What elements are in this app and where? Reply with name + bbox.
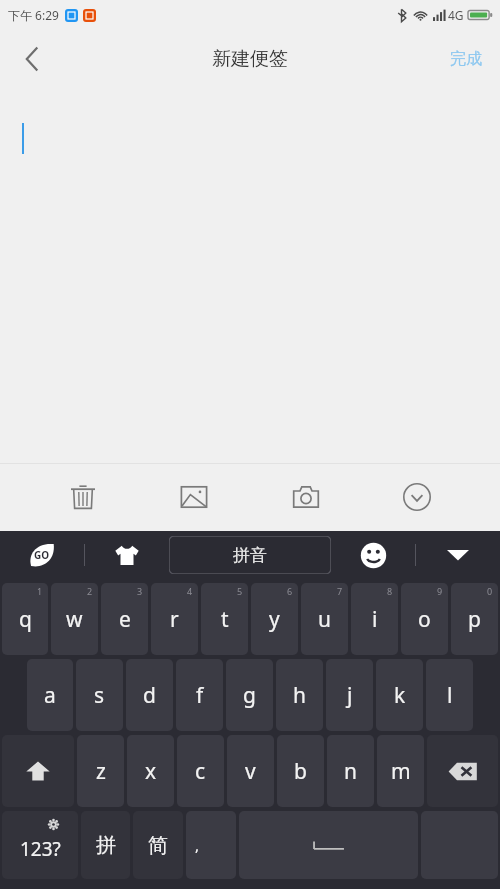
button[interactable]: a [27,659,73,731]
button[interactable]: 拼 [81,811,130,879]
staticText: 0 [487,585,493,597]
staticText: r [170,605,179,634]
staticText: u [318,605,331,634]
button[interactable]: Space [239,811,418,879]
button[interactable]: , [186,811,236,879]
button[interactable]: Shift [2,735,74,807]
staticText: 简 [148,833,168,858]
button[interactable]: j [326,659,373,731]
button[interactable]: 123? [2,811,78,879]
button[interactable]: c [177,735,224,807]
button[interactable]: s [76,659,123,731]
staticText: x [145,757,157,786]
staticText: GO [34,548,50,562]
button[interactable]: d [126,659,173,731]
staticText: 下午 6:29 [8,7,59,23]
staticText: s [94,681,105,710]
staticText: j [347,681,353,710]
button[interactable]: y [251,583,298,655]
button[interactable]: Take photo [278,469,334,525]
button[interactable]: h [276,659,323,731]
button[interactable]: f [176,659,223,731]
button[interactable]: w [51,583,98,655]
staticText: 5 [237,585,243,597]
staticText: o [418,605,431,634]
button[interactable]: Hide keyboard [416,531,500,579]
button[interactable]: q [2,583,48,655]
staticText: 8 [387,585,393,597]
button[interactable]: o [401,583,448,655]
button[interactable]: k [376,659,423,731]
button[interactable]: b [277,735,324,807]
staticText: 2 [87,585,93,597]
staticText: m [391,757,411,786]
staticText: t [221,605,229,634]
button[interactable]: t [201,583,248,655]
staticText: q [19,605,32,634]
staticText: 新建便签 [212,47,288,71]
staticText: b [294,757,307,786]
button[interactable]: Insert image [166,469,222,525]
staticText: k [394,681,406,710]
button[interactable]: Delete [55,469,111,525]
button[interactable]: e [101,583,148,655]
button[interactable]: GO Keyboard [0,531,84,579]
button[interactable]: 拼音 [169,536,331,574]
button[interactable]: Emoji [331,531,415,579]
button[interactable]: n [327,735,374,807]
staticText: 1 [37,585,43,597]
staticText: 3 [137,585,143,597]
button[interactable]: 简 [133,811,183,879]
button[interactable]: 完成 [438,39,494,79]
staticText: , [195,835,200,855]
button[interactable]: u [301,583,348,655]
button[interactable]: i [351,583,398,655]
staticText: 123? [20,836,61,862]
staticText: i [372,605,378,634]
staticText: 完成 [450,49,482,69]
button[interactable]: z [77,735,124,807]
staticText: 7 [337,585,343,597]
staticText: w [66,605,83,634]
button[interactable]: Hide keyboard [389,469,445,525]
button[interactable]: r [151,583,198,655]
button[interactable]: v [227,735,274,807]
staticText: l [447,681,453,710]
button[interactable]: l [426,659,473,731]
staticText: 6 [287,585,293,597]
staticText: e [119,605,131,634]
staticText: d [143,681,156,710]
button[interactable]: g [226,659,273,731]
staticText: a [44,681,56,710]
staticText: h [293,681,306,710]
staticText: z [96,757,106,786]
staticText: p [468,605,481,634]
staticText: 9 [437,585,443,597]
staticText: 拼音 [233,545,267,566]
staticText: n [344,757,357,786]
staticText: 拼 [96,833,116,858]
staticText: 4 [187,585,193,597]
staticText: g [243,681,256,710]
button[interactable]: Theme [85,531,169,579]
button[interactable]: m [377,735,424,807]
staticText: y [269,605,280,634]
button[interactable]: Backspace [427,735,498,807]
button[interactable]: Back [10,37,54,81]
staticText: f [196,681,204,710]
staticText: 4G [448,7,464,23]
staticText: c [195,757,206,786]
staticText: v [245,757,256,786]
button[interactable]: x [127,735,174,807]
button[interactable]: p [451,583,498,655]
